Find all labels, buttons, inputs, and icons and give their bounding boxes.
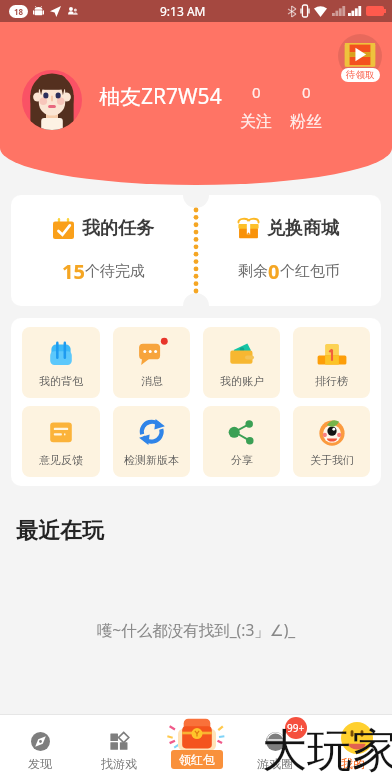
staticText: 关注 <box>240 112 272 132</box>
button[interactable]: 我的 <box>314 714 392 780</box>
staticText: 发现 <box>28 756 52 771</box>
staticText: 0 <box>252 82 261 102</box>
staticText: 我的 <box>341 756 365 771</box>
staticText: 15 <box>62 258 85 285</box>
button[interactable]: 我的背包 <box>22 327 100 398</box>
staticText: 关于我们 <box>310 453 354 467</box>
staticText: 意见反馈 <box>39 453 83 467</box>
staticText: 18 <box>14 6 24 17</box>
button[interactable]: 领红包 <box>158 714 236 780</box>
staticText: 检测新版本 <box>124 453 179 467</box>
button[interactable]: 关于我们 <box>293 406 370 477</box>
staticText: 剩余 <box>238 262 268 281</box>
button[interactable]: 0 <box>281 82 331 132</box>
staticText: 0 <box>268 258 280 285</box>
button[interactable]: 找游戏 <box>79 714 158 780</box>
staticText: 大玩家 <box>262 723 392 780</box>
button[interactable]: 意见反馈 <box>22 406 100 477</box>
button[interactable]: 消息 <box>113 327 190 398</box>
button[interactable]: 游戏圈 <box>236 714 314 780</box>
staticText: 我的账户 <box>220 374 264 388</box>
staticText: 99+ <box>287 721 305 735</box>
staticText: 我的背包 <box>39 374 83 388</box>
button[interactable]: 头像 <box>22 70 82 130</box>
button[interactable]: 检测新版本 <box>113 406 190 477</box>
staticText: 个待完成 <box>85 262 145 281</box>
button[interactable]: 分享 <box>203 406 280 477</box>
staticText: 最近在玩 <box>16 517 104 545</box>
button[interactable]: 发现 <box>0 714 79 780</box>
staticText: 嚄~什么都没有找到_(:3」∠)_ <box>0 619 392 640</box>
staticText: 待领取 <box>346 69 375 81</box>
button[interactable]: 排行榜 <box>293 327 370 398</box>
staticText: 粉丝 <box>290 112 322 132</box>
staticText: 9:13 AM <box>160 3 206 19</box>
staticText: 消息 <box>141 374 163 388</box>
staticText: 0 <box>302 82 311 102</box>
staticText: 柚友ZR7W54 <box>99 82 222 111</box>
staticText: 兑换商城 <box>267 217 339 240</box>
staticText: 领红包 <box>179 752 215 767</box>
staticText: 个红包币 <box>280 262 340 281</box>
staticText: 找游戏 <box>101 756 137 771</box>
staticText: 游戏圈 <box>257 756 293 771</box>
staticText: 我的任务 <box>82 217 154 240</box>
staticText: 排行榜 <box>315 374 348 388</box>
staticText: 分享 <box>231 453 253 467</box>
button[interactable]: 我的账户 <box>203 327 280 398</box>
button[interactable]: 我的任务 <box>11 195 196 306</box>
button[interactable]: 待领取宝箱 <box>334 34 386 82</box>
button[interactable]: 兑换商城 <box>196 195 381 306</box>
button[interactable]: 0 <box>231 82 281 132</box>
